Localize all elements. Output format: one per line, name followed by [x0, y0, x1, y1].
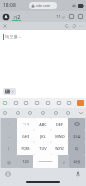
button[interactable]: 메모를...	[3, 34, 21, 40]
button[interactable]: Q	[68, 142, 85, 155]
staticText: 완료	[73, 159, 81, 164]
button[interactable]: Space	[33, 155, 58, 168]
button[interactable]: Table	[40, 110, 46, 116]
button[interactable]: Delete	[45, 100, 51, 106]
staticText: WXYZ	[55, 147, 64, 151]
staticText: Q	[75, 146, 78, 151]
staticText: ·	[8, 122, 10, 127]
button[interactable]: Undo	[64, 23, 70, 29]
button[interactable]: 완료	[69, 155, 85, 168]
staticText: MNO	[55, 134, 65, 139]
staticText: ABC	[39, 122, 47, 127]
button[interactable]: Palette	[2, 110, 8, 116]
staticText: JKL	[40, 134, 46, 139]
button[interactable]: Voice input	[74, 170, 82, 178]
button[interactable]: Backspace	[68, 118, 85, 130]
staticText: ㅣ	[7, 146, 11, 151]
staticText: 한글	[73, 134, 81, 139]
button[interactable]: Circle	[15, 110, 21, 116]
button[interactable]: Shape	[53, 110, 59, 116]
button[interactable]	[5, 88, 14, 95]
button[interactable]: ABC	[34, 118, 51, 130]
button[interactable]: Highlight	[77, 100, 84, 106]
staticText: 123	[22, 159, 29, 164]
button[interactable]: Image	[34, 100, 40, 106]
button[interactable]: JKL	[34, 130, 51, 142]
button[interactable]: Attach	[56, 100, 62, 106]
button[interactable]: Menu	[77, 13, 84, 20]
button[interactable]: More options	[78, 23, 84, 29]
button[interactable]: ㅣ	[1, 142, 17, 155]
button[interactable]: PQRS	[17, 142, 34, 155]
staticText: 11	[56, 14, 61, 20]
button[interactable]: Search	[65, 110, 71, 116]
button[interactable]: Tabs	[68, 13, 75, 20]
button[interactable]: Redo	[71, 23, 77, 29]
button[interactable]: Undo	[2, 100, 8, 106]
button[interactable]: ♯	[58, 155, 69, 168]
button[interactable]: Collapse	[78, 110, 84, 116]
staticText: site.com	[36, 3, 51, 8]
button[interactable]: WXYZ	[51, 142, 68, 155]
staticText: ‥	[8, 134, 11, 139]
staticText: 메모를...	[5, 34, 21, 40]
staticText: GHI	[22, 134, 29, 139]
staticText: ♯	[63, 160, 65, 164]
button[interactable]: Change language	[4, 170, 12, 178]
button[interactable]: Checklist	[23, 100, 29, 106]
staticText: DEF	[56, 122, 63, 127]
staticText: 18:08	[3, 2, 16, 9]
button[interactable]: List	[13, 100, 19, 106]
button[interactable]: 가2	[11, 13, 22, 21]
button[interactable]: site.com	[29, 2, 57, 9]
button[interactable]: Info	[66, 100, 72, 106]
button[interactable]: 11	[56, 14, 65, 20]
button[interactable]: DEF	[51, 118, 68, 130]
button[interactable]: ☺	[1, 155, 17, 168]
staticText: 가2	[13, 14, 21, 20]
staticText: ☺	[7, 160, 11, 164]
button[interactable]: TUV	[34, 142, 51, 155]
button[interactable]: 한글	[68, 130, 85, 142]
button[interactable]: GHI	[17, 130, 34, 142]
button[interactable]: MNO	[51, 130, 68, 142]
button[interactable]: Pen	[27, 110, 33, 116]
staticText: TUV	[39, 146, 47, 151]
button[interactable]: Close	[2, 23, 8, 29]
button[interactable]: Profile	[2, 13, 10, 21]
button[interactable]: 123	[17, 155, 33, 168]
button[interactable]: ㄱㅋ	[17, 118, 34, 130]
staticText: ㄱㅋ	[22, 122, 30, 127]
staticText: PQRS	[21, 147, 30, 151]
